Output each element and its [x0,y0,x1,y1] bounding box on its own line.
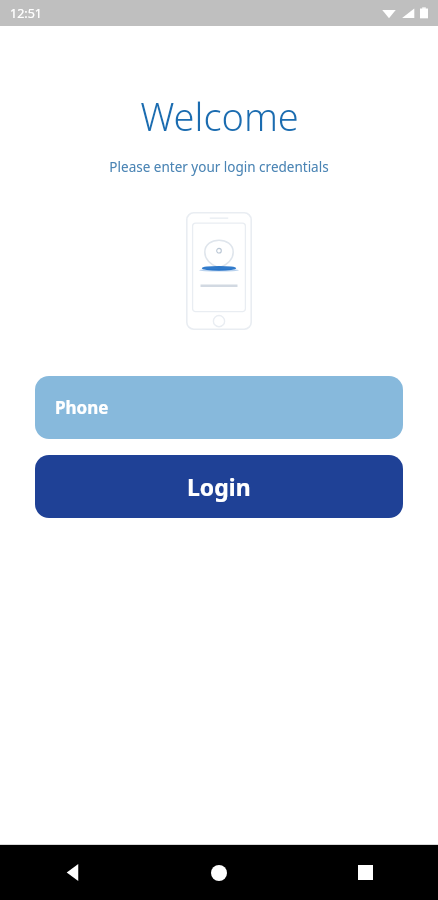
staticText: 12:51 [10,5,42,22]
staticText: Login [187,471,251,502]
button[interactable]: Phone [35,376,403,439]
button[interactable]: Recent apps [292,845,438,900]
staticText: Please enter your login credentials [109,158,329,176]
button[interactable]: Home [146,845,292,900]
staticText: Welcome [140,90,299,142]
staticText: Phone [55,396,109,419]
button[interactable]: Login [35,455,403,518]
button[interactable]: Back [0,845,146,900]
